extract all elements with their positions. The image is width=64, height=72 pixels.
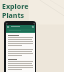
button[interactable] — [8, 59, 33, 71]
button[interactable] — [8, 49, 33, 57]
button[interactable]: Search — [32, 26, 34, 28]
staticText: Explore — [2, 2, 29, 12]
button[interactable]: Explore — [2, 2, 29, 22]
button[interactable] — [7, 29, 34, 31]
button[interactable] — [8, 35, 33, 47]
staticText: Plants — [2, 11, 25, 21]
button[interactable]: Menu — [4, 21, 36, 72]
